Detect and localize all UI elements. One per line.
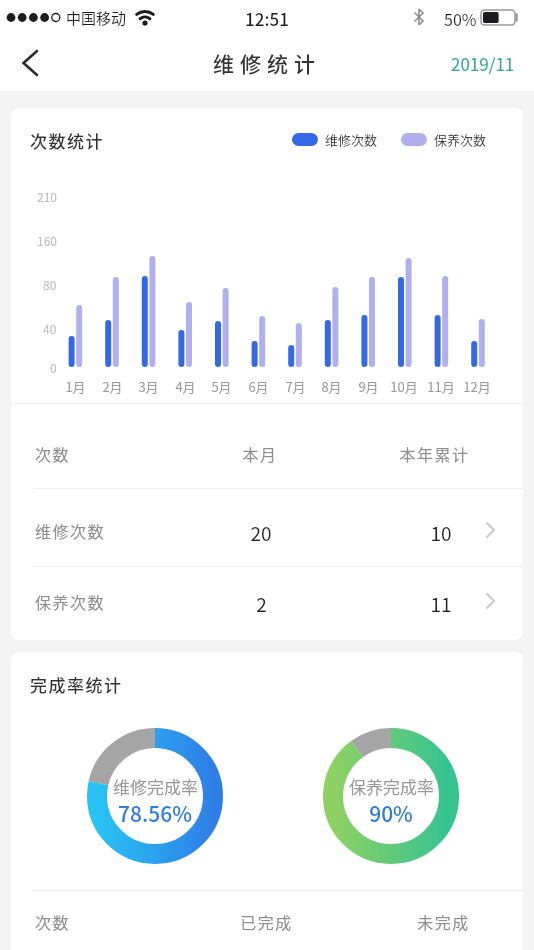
staticText: 78.56% bbox=[118, 798, 192, 828]
staticText: 中国移动 bbox=[66, 7, 127, 29]
staticText: 本年累计 bbox=[399, 442, 470, 465]
staticText: 次数统计 bbox=[30, 128, 104, 153]
staticText: 12:51 bbox=[245, 6, 289, 31]
staticText: 8月 bbox=[321, 377, 342, 396]
staticText: 9月 bbox=[358, 377, 379, 396]
staticText: 90% bbox=[369, 798, 413, 828]
staticText: 7月 bbox=[285, 377, 306, 396]
staticText: 次数 bbox=[35, 442, 71, 465]
staticText: 已完成 bbox=[240, 910, 293, 933]
staticText: 80 bbox=[43, 276, 57, 293]
staticText: 2019/11 bbox=[451, 51, 515, 76]
staticText: 维修次数 bbox=[325, 130, 378, 149]
staticText: 50% bbox=[444, 7, 477, 30]
staticText: 40 bbox=[43, 320, 57, 337]
staticText: 10 bbox=[430, 519, 452, 547]
staticText: 6月 bbox=[248, 377, 269, 396]
staticText: 5月 bbox=[211, 377, 232, 396]
staticText: 保养完成率 bbox=[349, 774, 434, 799]
staticText: 完成率统计 bbox=[30, 672, 123, 697]
staticText: 3月 bbox=[138, 377, 159, 396]
button[interactable] bbox=[438, 45, 528, 91]
button[interactable] bbox=[8, 45, 56, 91]
staticText: 11 bbox=[430, 590, 452, 618]
staticText: 10月 bbox=[390, 377, 418, 396]
staticText: 保养次数 bbox=[434, 130, 487, 149]
staticText: 1月 bbox=[65, 377, 86, 396]
staticText: 2月 bbox=[102, 377, 123, 396]
staticText: 20 bbox=[250, 519, 272, 547]
staticText: 维修完成率 bbox=[113, 774, 198, 799]
staticText: 210 bbox=[37, 188, 57, 205]
staticText: 维修统计 bbox=[213, 48, 321, 78]
staticText: 次数 bbox=[35, 910, 71, 933]
staticText: 2 bbox=[256, 590, 267, 618]
button[interactable] bbox=[11, 566, 523, 640]
staticText: 0 bbox=[50, 359, 57, 376]
staticText: 未完成 bbox=[417, 910, 470, 933]
staticText: 保养次数 bbox=[35, 590, 106, 613]
staticText: 本月 bbox=[242, 442, 278, 465]
staticText: 11月 bbox=[427, 377, 455, 396]
staticText: 4月 bbox=[175, 377, 196, 396]
staticText: 维修次数 bbox=[35, 519, 106, 542]
staticText: 160 bbox=[37, 232, 57, 249]
button[interactable] bbox=[11, 489, 523, 566]
staticText: 12月 bbox=[463, 377, 491, 396]
